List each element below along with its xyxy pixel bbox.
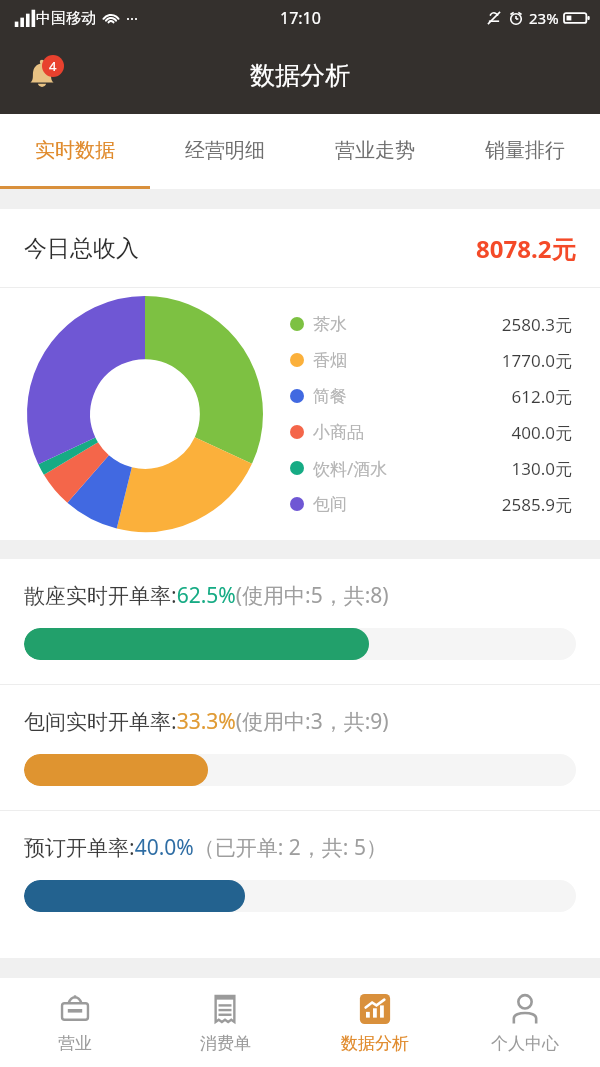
staticText: 营业	[58, 1033, 92, 1054]
staticText: 香烟	[313, 350, 399, 371]
button[interactable]: 预订开单率:40.0%（已开单: 2，共: 5）	[0, 811, 600, 936]
button[interactable]: 个人中心	[450, 978, 600, 1067]
staticText: 茶水	[313, 314, 399, 335]
staticText: 饮料/酒水	[313, 457, 399, 480]
staticText: 简餐	[313, 386, 399, 407]
staticText: 2585.9元	[399, 493, 572, 516]
staticText: 小商品	[313, 422, 399, 443]
staticText: 中国移动	[36, 9, 96, 28]
button[interactable]: 通知	[18, 51, 66, 99]
button[interactable]: 经营明细	[150, 114, 300, 186]
button[interactable]: 实时数据	[0, 114, 150, 186]
button[interactable]: 消费单	[150, 978, 300, 1067]
staticText: 130.0元	[399, 457, 572, 480]
button[interactable]: 销量排行	[450, 114, 600, 186]
staticText: 1770.0元	[399, 349, 572, 372]
staticText: 612.0元	[399, 385, 572, 408]
staticText: 实时数据	[35, 138, 115, 163]
button[interactable]: 营业	[0, 978, 150, 1067]
staticText: 销量排行	[485, 138, 565, 163]
staticText: 2580.3元	[399, 313, 572, 336]
staticText: 400.0元	[399, 421, 572, 444]
staticText: 营业走势	[335, 138, 415, 163]
staticText: 包间	[313, 494, 399, 515]
staticText: 23%	[529, 8, 559, 28]
staticText: 散座实时开单率:62.5%(使用中:5，共:8)	[24, 581, 389, 610]
staticText: 8078.2元	[476, 232, 576, 265]
button[interactable]: 散座实时开单率:62.5%(使用中:5，共:8)	[0, 559, 600, 684]
staticText: 经营明细	[185, 138, 265, 163]
staticText: 消费单	[200, 1033, 251, 1054]
button[interactable]: 包间实时开单率:33.3%(使用中:3，共:9)	[0, 685, 600, 810]
staticText: ···	[126, 8, 139, 28]
button[interactable]: 数据分析	[300, 978, 450, 1067]
staticText: 包间实时开单率:33.3%(使用中:3，共:9)	[24, 707, 389, 736]
staticText: 数据分析	[341, 1033, 409, 1054]
staticText: 4	[49, 57, 57, 75]
button[interactable]: 营业走势	[300, 114, 450, 186]
staticText: 个人中心	[491, 1033, 559, 1054]
staticText: 今日总收入	[24, 234, 139, 263]
staticText: 17:10	[280, 7, 321, 29]
staticText: 预订开单率:40.0%（已开单: 2，共: 5）	[24, 833, 387, 862]
staticText: 数据分析	[250, 60, 350, 91]
